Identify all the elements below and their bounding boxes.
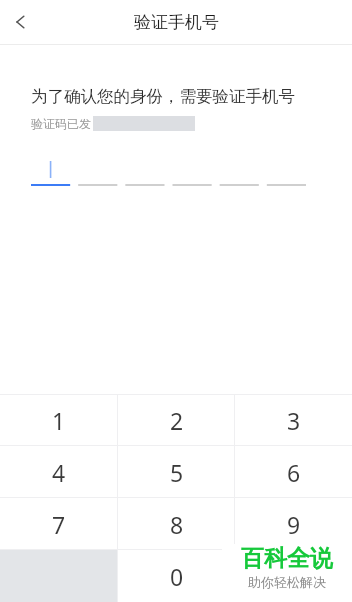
staticText: 验证码已发 — [31, 116, 91, 131]
button[interactable]: Back — [0, 0, 44, 44]
staticText: 5 — [170, 457, 184, 488]
button[interactable] — [0, 151, 352, 187]
button[interactable]: 4 — [0, 446, 118, 498]
button[interactable]: 1 — [0, 395, 118, 446]
staticText: 8 — [170, 509, 184, 540]
staticText: 0 — [170, 561, 184, 592]
staticText: 6 — [287, 457, 301, 488]
staticText: 百科全说 — [241, 544, 333, 573]
staticText: 为了确认您的身份，需要验证手机号 — [31, 86, 295, 107]
staticText: 3 — [287, 405, 301, 436]
button[interactable]: 6 — [235, 446, 352, 498]
staticText: 验证手机号 — [134, 12, 219, 33]
staticText: 7 — [52, 509, 66, 540]
button[interactable]: 5 — [118, 446, 235, 498]
staticText: 助你轻松解决 — [248, 574, 326, 590]
button[interactable]: 8 — [118, 498, 235, 550]
button[interactable]: 0 — [118, 550, 235, 602]
staticText: 4 — [52, 457, 66, 488]
staticText: 2 — [170, 405, 184, 436]
staticText: 9 — [287, 509, 301, 540]
button[interactable]: 7 — [0, 498, 118, 550]
button[interactable]: 9 — [235, 498, 352, 550]
button[interactable]: 2 — [118, 395, 235, 446]
button[interactable]: 3 — [235, 395, 352, 446]
staticText: 1 — [52, 405, 66, 436]
button[interactable]: Delete — [235, 550, 352, 602]
